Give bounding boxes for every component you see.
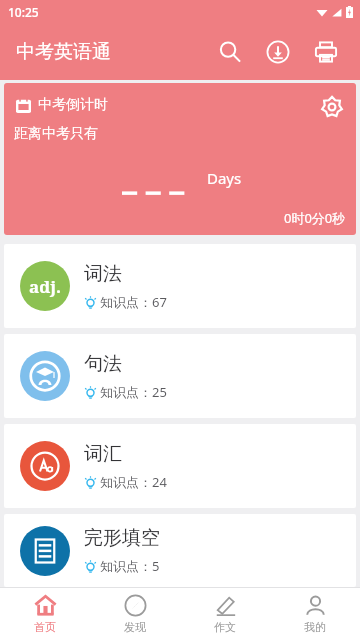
button[interactable]: adj. <box>4 244 356 328</box>
button[interactable]: Settings <box>314 89 350 125</box>
button[interactable]: Download <box>254 28 302 76</box>
button[interactable]: 词汇 <box>4 424 356 508</box>
staticText: Days <box>207 168 242 188</box>
staticText: 知识点：25 <box>100 383 167 401</box>
button[interactable]: 中考倒计时 <box>4 83 356 235</box>
button[interactable]: 我的 <box>270 587 360 641</box>
staticText: 知识点：5 <box>100 557 160 575</box>
staticText: adj. <box>29 275 62 298</box>
button[interactable]: 首页 <box>0 587 90 641</box>
button[interactable]: 句法 <box>4 334 356 418</box>
staticText: 0时0分0秒 <box>284 209 346 227</box>
button[interactable]: 作文 <box>180 587 270 641</box>
button[interactable]: Print <box>302 28 350 76</box>
staticText: 发现 <box>124 620 146 634</box>
button[interactable]: 完形填空 <box>4 514 356 587</box>
button[interactable]: Search <box>206 28 254 76</box>
staticText: 我的 <box>304 620 326 634</box>
staticText: 距离中考只有 <box>14 125 98 143</box>
staticText: 知识点：67 <box>100 293 167 311</box>
staticText: 完形填空 <box>84 526 160 550</box>
staticText: 词法 <box>84 262 122 286</box>
button[interactable]: 发现 <box>90 587 180 641</box>
staticText: 知识点：24 <box>100 473 167 491</box>
staticText: 10:25 <box>8 4 39 20</box>
staticText: 作文 <box>214 620 236 634</box>
staticText: 中考倒计时 <box>38 96 108 114</box>
staticText: 中考英语通 <box>16 40 111 64</box>
staticText: 首页 <box>34 620 56 634</box>
staticText: 词汇 <box>84 442 122 466</box>
staticText: 句法 <box>84 352 122 376</box>
